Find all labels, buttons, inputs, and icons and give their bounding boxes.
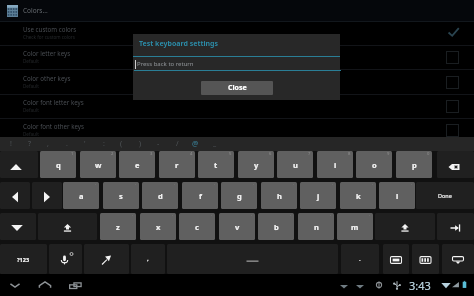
button[interactable]: Color font letter keys <box>0 95 474 119</box>
staticText: , <box>47 139 49 149</box>
staticText: : <box>103 139 105 149</box>
button[interactable]: Tab <box>437 213 474 240</box>
button[interactable]: z <box>100 213 136 240</box>
button[interactable]: Space <box>167 244 338 274</box>
button[interactable]: Color letter keys <box>0 46 474 70</box>
button[interactable]: Move left <box>0 182 30 209</box>
staticText: 6 <box>269 151 272 157</box>
button[interactable]: v <box>219 213 255 240</box>
button[interactable]: m <box>337 213 373 240</box>
staticText: / <box>176 139 179 149</box>
button[interactable]: Recent apps <box>64 274 86 296</box>
button[interactable]: f <box>182 182 218 209</box>
button[interactable]: x <box>140 213 176 240</box>
button[interactable]: Delete <box>437 151 474 178</box>
button[interactable]: @ <box>186 137 205 151</box>
button[interactable]: Input settings <box>84 244 129 274</box>
staticText: Done <box>438 192 452 199</box>
button[interactable]: ?123 <box>0 244 47 274</box>
button[interactable]: Hide keyboard <box>0 213 36 240</box>
button[interactable]: Move right <box>32 182 62 209</box>
staticText: 9 <box>387 151 390 157</box>
button[interactable]: Close keyboard <box>442 244 474 274</box>
button[interactable]: c <box>179 213 215 240</box>
staticText: - <box>157 139 160 149</box>
button[interactable]: Voice input <box>49 244 82 274</box>
staticText: ' <box>84 139 86 149</box>
staticText: 4 <box>190 151 193 157</box>
staticText: @ <box>192 139 199 149</box>
button[interactable]: d <box>142 182 178 209</box>
button[interactable]: Color font other keys <box>0 119 474 143</box>
button[interactable]: Use custom colors <box>0 22 474 46</box>
staticText: i <box>334 160 337 170</box>
staticText: k <box>356 191 361 201</box>
button[interactable]: b <box>258 213 294 240</box>
staticText: ( <box>120 139 123 149</box>
button[interactable]: y <box>238 151 274 178</box>
button[interactable]: Back <box>4 274 26 296</box>
button[interactable]: Change layout <box>412 244 439 274</box>
staticText: . <box>66 139 68 149</box>
button[interactable]: t <box>198 151 234 178</box>
button[interactable]: . <box>341 244 379 274</box>
button[interactable]: i <box>317 151 353 178</box>
staticText: e <box>135 160 140 170</box>
staticText: Color font other keys <box>23 122 84 130</box>
button[interactable]: Color other keys <box>0 71 474 95</box>
button[interactable]: a <box>63 182 99 209</box>
staticText: . <box>359 255 361 263</box>
staticText: Close <box>228 83 247 93</box>
button[interactable]: ? <box>20 137 39 151</box>
button[interactable]: Home <box>34 274 56 296</box>
button[interactable]: e <box>119 151 155 178</box>
button[interactable]: Close <box>201 81 273 95</box>
button[interactable]: o <box>356 151 392 178</box>
button[interactable]: , <box>131 244 165 274</box>
staticText: c <box>195 222 199 232</box>
button[interactable]: Switch keyboard <box>383 244 409 274</box>
staticText: b <box>274 222 279 232</box>
button[interactable]: ( <box>112 137 131 151</box>
button[interactable]: h <box>261 182 297 209</box>
button[interactable]: k <box>340 182 376 209</box>
button[interactable]: n <box>298 213 334 240</box>
staticText: f <box>199 191 202 201</box>
button[interactable]: p <box>396 151 432 178</box>
button[interactable]: Shift <box>38 213 97 240</box>
button[interactable]: u <box>277 151 313 178</box>
button[interactable]: ) <box>131 137 150 151</box>
staticText: 8 <box>348 151 351 157</box>
button[interactable]: s <box>103 182 139 209</box>
button[interactable]: Colors... <box>0 0 474 21</box>
staticText: Color letter keys <box>23 49 71 57</box>
button[interactable]: Shift <box>0 151 38 178</box>
button[interactable]: Done <box>416 182 474 209</box>
button[interactable]: q <box>40 151 76 178</box>
button[interactable]: r <box>159 151 195 178</box>
staticText: n <box>314 222 319 232</box>
button[interactable]: l <box>379 182 415 209</box>
staticText: 7 <box>308 151 311 157</box>
button[interactable]: j <box>300 182 336 209</box>
staticText: ! <box>10 139 12 149</box>
staticText: y <box>254 160 259 170</box>
staticText: Default <box>23 131 39 137</box>
button[interactable]: Shift <box>375 213 435 240</box>
button[interactable]: / <box>168 137 187 151</box>
button[interactable]: w <box>80 151 116 178</box>
button[interactable]: g <box>221 182 257 209</box>
